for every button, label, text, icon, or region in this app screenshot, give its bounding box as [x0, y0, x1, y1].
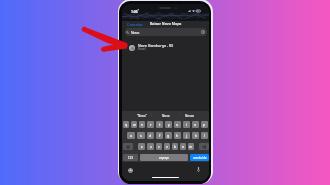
staticText: m: [189, 144, 193, 149]
button[interactable]: Clear text: [201, 30, 205, 34]
button[interactable]: h: [174, 132, 181, 139]
staticText: Cancelar: [127, 22, 143, 27]
staticText: t: [159, 122, 161, 127]
button[interactable]: l: [201, 132, 208, 139]
staticText: h: [176, 133, 179, 138]
staticText: espaço: [159, 156, 169, 160]
staticText: y: [168, 122, 170, 127]
staticText: p: [203, 122, 206, 127]
button[interactable]: “Novo”: [137, 112, 147, 119]
staticText: l: [204, 133, 205, 138]
button[interactable]: Shift: [123, 143, 133, 150]
staticText: j: [186, 133, 187, 138]
staticText: v: [166, 144, 168, 149]
staticText: r: [150, 122, 152, 127]
button[interactable]: Novas: [185, 112, 194, 119]
button[interactable]: 123: [123, 154, 138, 161]
button[interactable]: i: [183, 121, 190, 128]
button[interactable]: p: [201, 121, 208, 128]
button[interactable]: a: [127, 132, 135, 139]
button[interactable]: Dictation: [197, 167, 200, 172]
staticText: Baixar Novo Mapa: [150, 21, 182, 26]
staticText: c: [158, 144, 160, 149]
staticText: n: [182, 144, 185, 149]
staticText: e: [141, 122, 143, 127]
staticText: “Novo”: [137, 114, 147, 118]
staticText: k: [195, 133, 197, 138]
button[interactable]: b: [172, 143, 178, 150]
button[interactable]: z: [138, 143, 145, 150]
staticText: 1:06: [131, 9, 138, 13]
staticText: Nova: [162, 114, 170, 118]
button[interactable]: Emoji keyboard: [128, 168, 133, 173]
staticText: x: [150, 144, 152, 149]
staticText: a: [130, 133, 132, 138]
staticText: s: [140, 133, 142, 138]
staticText: q: [125, 122, 128, 127]
staticText: Novo Hamburgo - RS: [138, 43, 174, 48]
staticText: w: [133, 122, 136, 127]
button[interactable]: v: [164, 143, 170, 150]
button[interactable]: w: [131, 121, 137, 128]
button[interactable]: r: [147, 121, 154, 128]
button[interactable]: c: [156, 143, 162, 150]
staticText: Novas: [185, 114, 194, 118]
button[interactable]: f: [156, 132, 163, 139]
button[interactable]: Novo: [125, 28, 207, 36]
button[interactable]: y: [165, 121, 172, 128]
button[interactable]: espaço: [140, 154, 188, 161]
staticText: i: [186, 122, 187, 127]
button[interactable]: n: [180, 143, 186, 150]
staticText: z: [141, 144, 143, 149]
button[interactable]: e: [139, 121, 145, 128]
staticText: u: [176, 122, 179, 127]
button[interactable]: q: [123, 121, 129, 128]
button[interactable]: d: [147, 132, 154, 139]
button[interactable]: x: [147, 143, 154, 150]
button[interactable]: t: [156, 121, 163, 128]
button[interactable]: j: [183, 132, 190, 139]
staticText: concluído: [193, 156, 207, 160]
staticText: 123: [128, 156, 133, 160]
staticText: f: [159, 133, 161, 138]
button[interactable]: concluído: [190, 154, 209, 161]
staticText: g: [167, 133, 170, 138]
button[interactable]: m: [188, 143, 194, 150]
button[interactable]: u: [174, 121, 181, 128]
staticText: o: [194, 122, 197, 127]
staticText: b: [174, 144, 177, 149]
staticText: Brazil: [138, 47, 146, 51]
button[interactable]: Novo Hamburgo - RS: [122, 41, 209, 53]
staticText: Novo: [131, 30, 140, 35]
staticText: d: [149, 133, 152, 138]
button[interactable]: k: [192, 132, 199, 139]
button[interactable]: Cancelar: [127, 22, 143, 27]
button[interactable]: g: [165, 132, 172, 139]
button[interactable]: s: [137, 132, 145, 139]
button[interactable]: Backspace: [199, 143, 209, 150]
button[interactable]: Nova: [162, 112, 170, 119]
button[interactable]: o: [192, 121, 199, 128]
